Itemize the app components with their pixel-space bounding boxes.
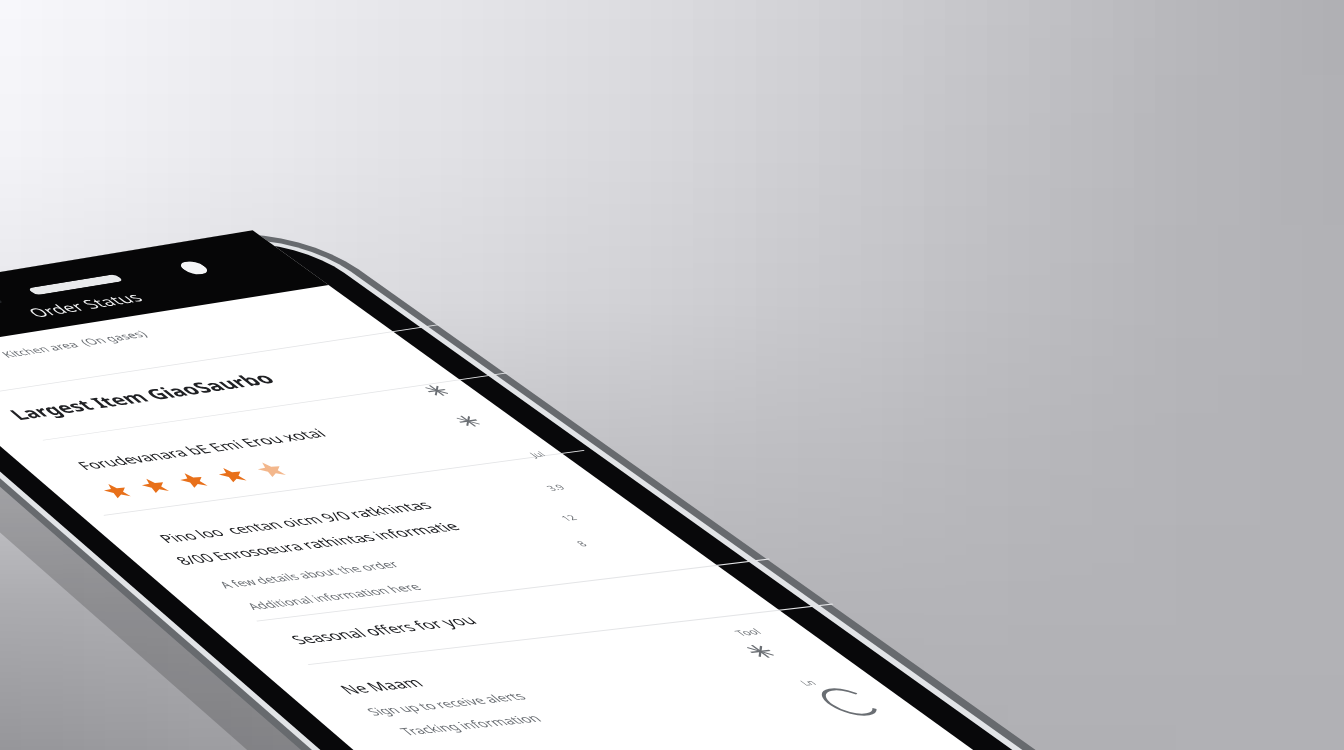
button[interactable]: Action: [388, 594, 414, 620]
button[interactable]: Refresh: [400, 656, 430, 686]
button[interactable]: Seasonal offers for you: [56, 524, 219, 544]
button[interactable]: Ne Maam: [48, 588, 117, 608]
button[interactable]: Action: [404, 284, 430, 310]
button[interactable]: Tracking information: [56, 644, 174, 660]
button[interactable]: Pino loo centan oicm 9/0 ratkhintas: [46, 382, 299, 402]
button[interactable]: 8/00 Enrosoeura rathintas informatie: [38, 412, 299, 432]
button[interactable]: Tool: [402, 578, 420, 590]
button[interactable]: 3.9: [408, 386, 421, 398]
button[interactable]: A few details about the order: [50, 450, 214, 466]
button[interactable]: Largest Item GiaoSaurbo: [44, 190, 305, 219]
button[interactable]: Additional information here: [52, 480, 209, 496]
button[interactable]: Forudevanara bE Emi Erou xotai: [50, 274, 290, 296]
button[interactable]: Sign up to receive alerts: [48, 618, 183, 634]
